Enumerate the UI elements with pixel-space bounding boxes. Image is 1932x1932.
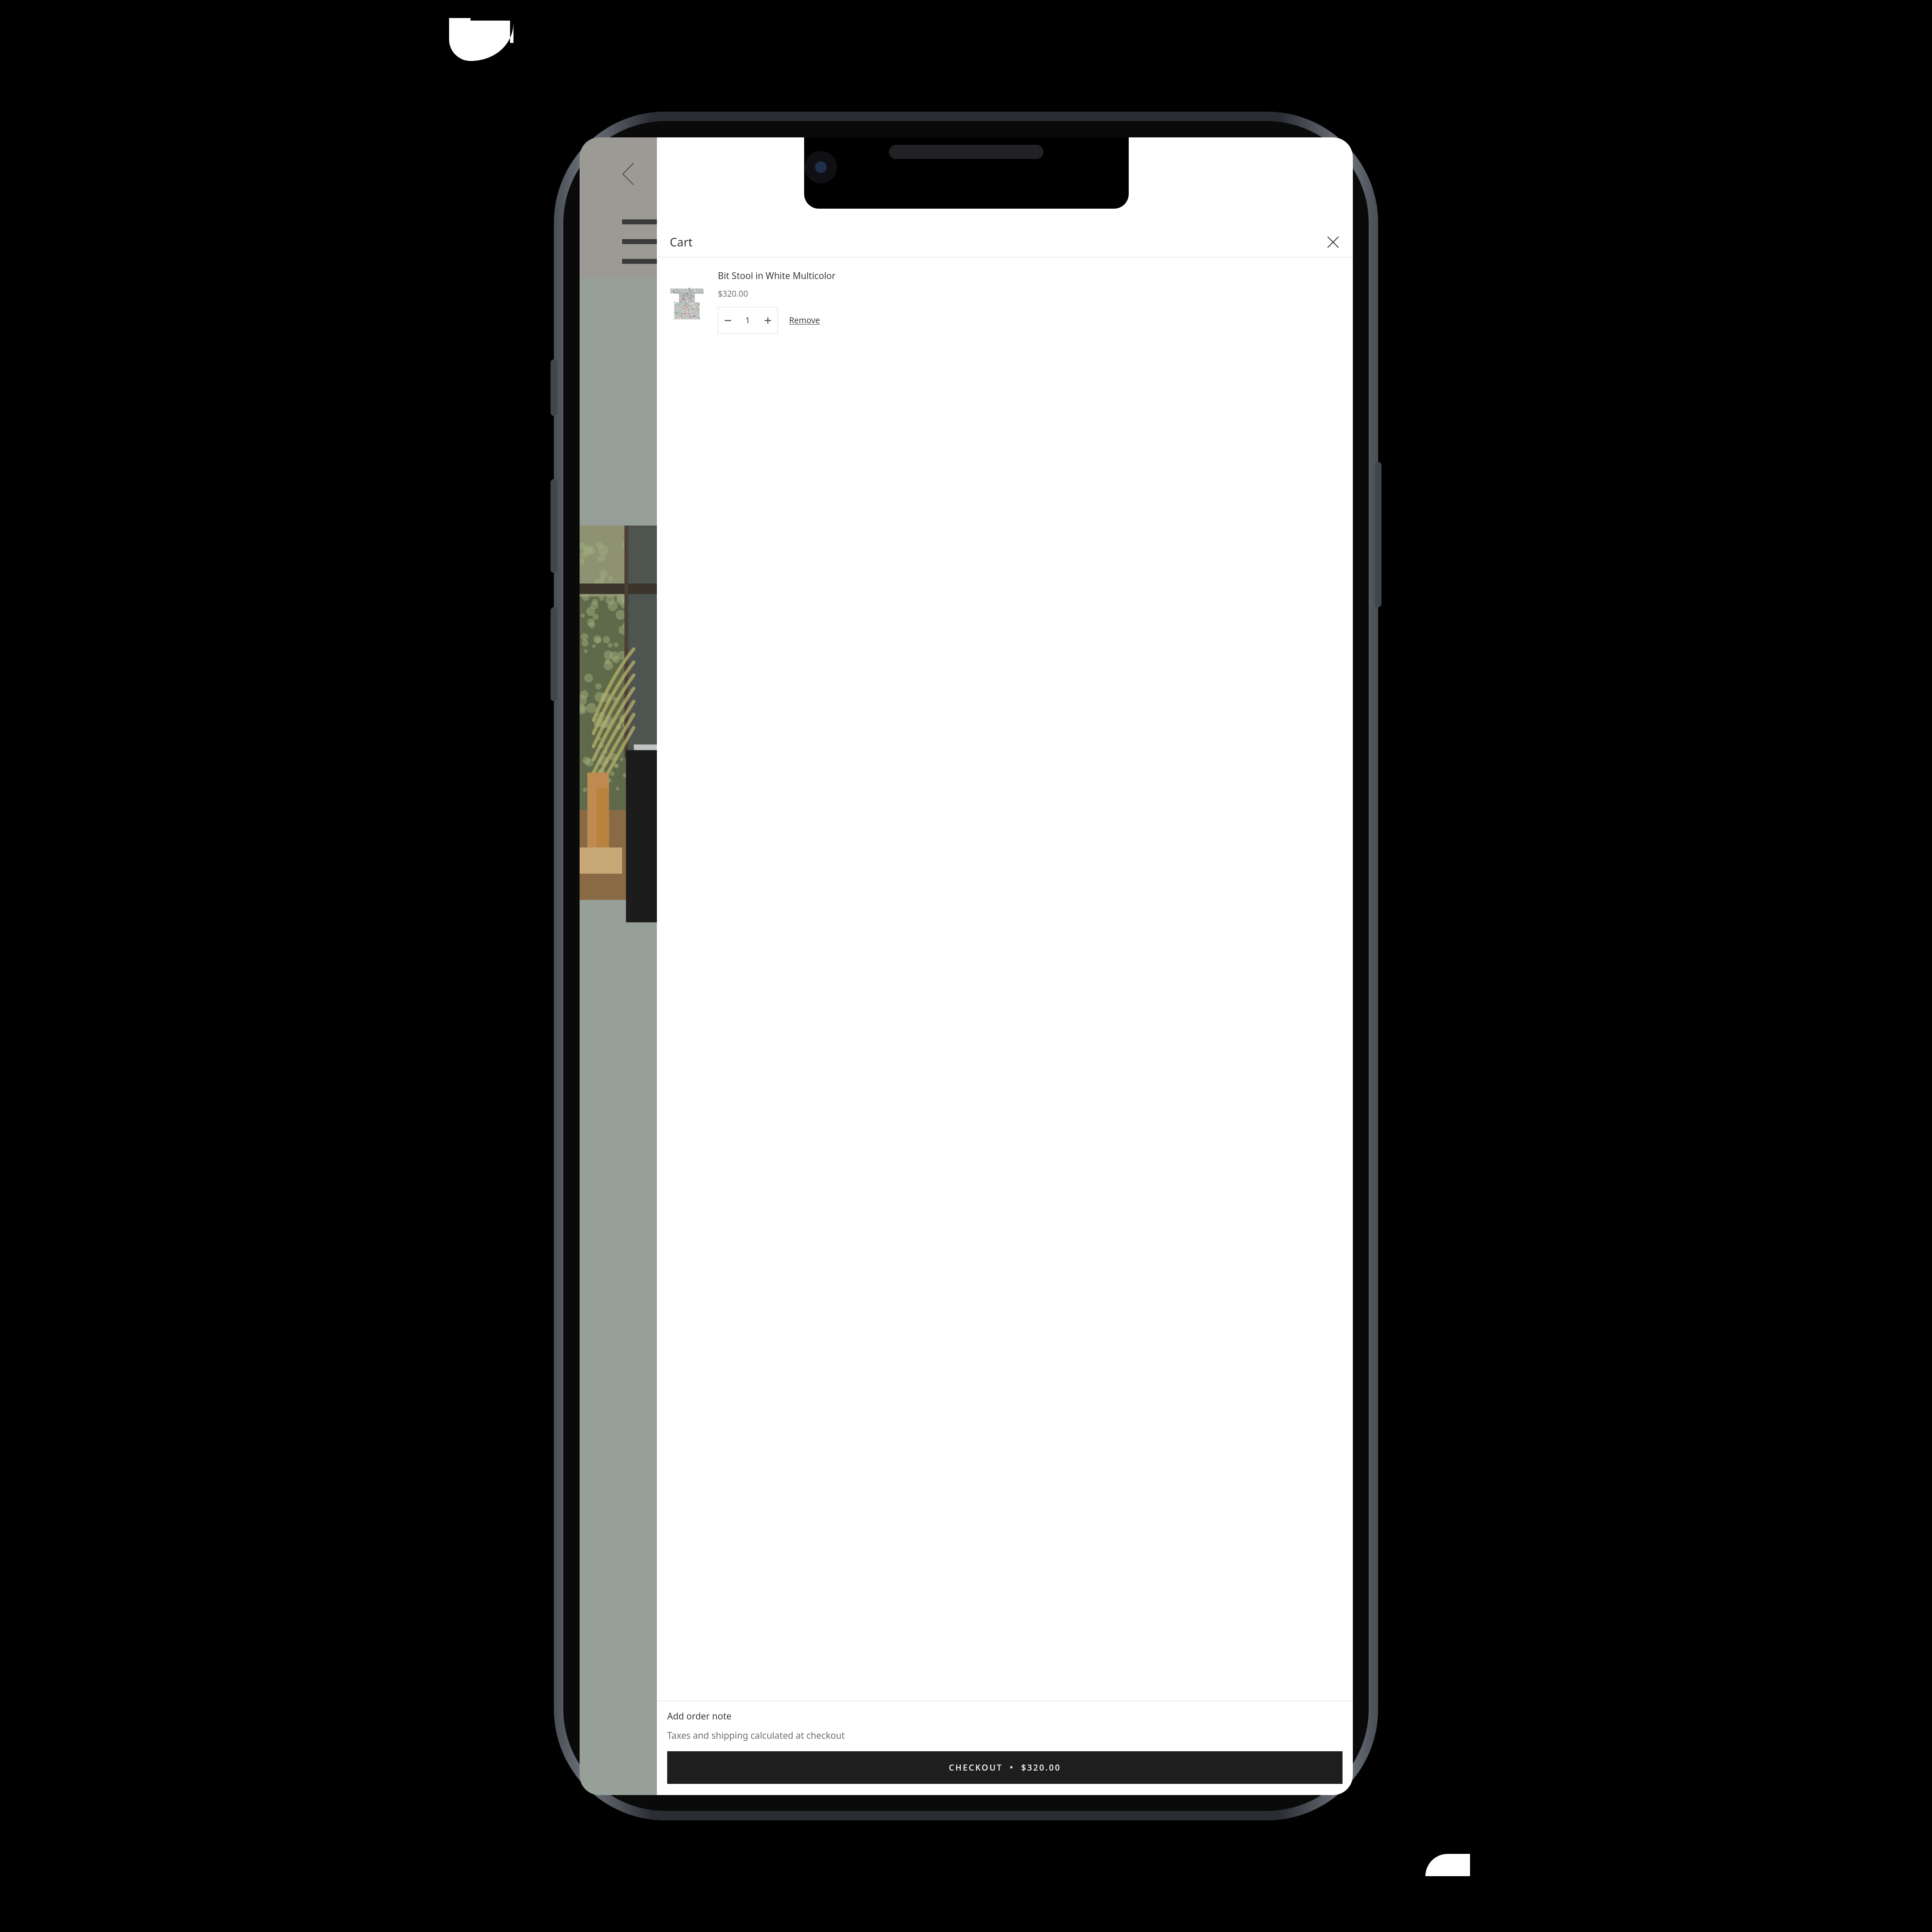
button[interactable]: Close cart [1321,230,1345,254]
staticText: Bit Stool in White Multicolor [718,270,836,282]
button[interactable]: Remove [787,313,822,328]
button[interactable]: Increase quantity [758,307,778,334]
button[interactable]: Decrease quantity [718,307,738,334]
button[interactable]: Add order note [667,1710,732,1722]
staticText: Taxes and shipping calculated at checkou… [667,1729,845,1742]
staticText: Cart [670,234,693,250]
staticText: Remove [789,315,820,326]
staticText: $320.00 [718,288,748,299]
staticText: Add order note [667,1710,732,1722]
staticText: 1 [745,315,750,326]
button[interactable]: CHECKOUT • $320.00 [667,1751,1343,1784]
staticText: CHECKOUT • $320.00 [949,1762,1061,1773]
